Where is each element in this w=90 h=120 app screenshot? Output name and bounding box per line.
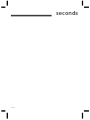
staticText: seconds bbox=[56, 9, 79, 16]
button[interactable]: Label bbox=[56, 9, 79, 16]
